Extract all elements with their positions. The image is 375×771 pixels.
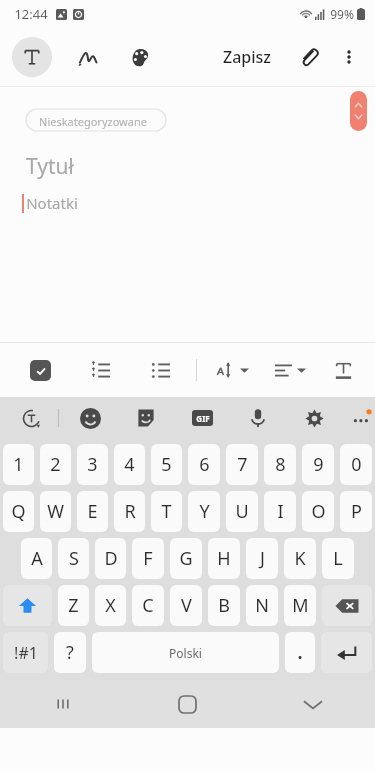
staticText: .: [297, 640, 303, 665]
staticText: 8: [275, 452, 286, 477]
button[interactable]: S: [58, 538, 89, 579]
button[interactable]: Checklist: [22, 352, 58, 388]
button[interactable]: 9: [302, 444, 334, 485]
button[interactable]: .: [285, 632, 315, 673]
button[interactable]: Font size: [213, 353, 253, 387]
button[interactable]: G: [170, 538, 202, 579]
button[interactable]: Stickers: [131, 403, 161, 433]
button[interactable]: 8: [264, 444, 296, 485]
button[interactable]: Alignment: [271, 354, 310, 387]
staticText: 9: [313, 452, 324, 477]
staticText: L: [333, 546, 343, 571]
button[interactable]: J: [246, 538, 278, 579]
staticText: T: [161, 499, 172, 524]
button[interactable]: Text recognition: [16, 403, 46, 433]
staticText: E: [87, 499, 98, 524]
button[interactable]: P: [340, 491, 372, 532]
staticText: A: [31, 546, 43, 571]
button[interactable]: Text style: [325, 352, 361, 388]
button[interactable]: Nieskategoryzowane: [26, 109, 160, 134]
button[interactable]: Draw: [68, 37, 108, 77]
button[interactable]: R: [114, 491, 145, 532]
staticText: I: [277, 499, 284, 524]
button[interactable]: W: [40, 491, 71, 532]
button[interactable]: F: [132, 538, 164, 579]
button[interactable]: Y: [188, 491, 220, 532]
staticText: 1: [13, 452, 24, 477]
button[interactable]: 7: [226, 444, 258, 485]
button[interactable]: D: [95, 538, 126, 579]
button[interactable]: More: [349, 403, 375, 433]
staticText: R: [124, 499, 136, 524]
staticText: 5: [161, 452, 172, 477]
staticText: 0: [351, 452, 362, 477]
button[interactable]: 2: [40, 444, 71, 485]
button[interactable]: Backspace: [322, 585, 372, 626]
button[interactable]: 6: [188, 444, 220, 485]
staticText: Notatki: [26, 193, 78, 213]
button[interactable]: Recent apps: [0, 680, 125, 728]
button[interactable]: Home: [125, 680, 250, 728]
staticText: F: [143, 546, 153, 571]
button[interactable]: C: [132, 585, 164, 626]
button[interactable]: T: [151, 491, 182, 532]
staticText: B: [218, 593, 230, 618]
button[interactable]: 5: [151, 444, 182, 485]
staticText: G: [179, 546, 193, 571]
button[interactable]: Numbered list: [82, 352, 118, 388]
button[interactable]: !#1: [3, 632, 48, 673]
button[interactable]: X: [95, 585, 126, 626]
button[interactable]: 3: [77, 444, 108, 485]
staticText: P: [351, 499, 362, 524]
staticText: Z: [68, 593, 79, 618]
button[interactable]: U: [226, 491, 258, 532]
staticText: V: [181, 593, 192, 618]
button[interactable]: ?: [54, 632, 86, 673]
staticText: M: [292, 593, 309, 618]
button[interactable]: L: [322, 538, 354, 579]
button[interactable]: V: [170, 585, 202, 626]
button[interactable]: O: [302, 491, 334, 532]
button[interactable]: Voice input: [243, 403, 273, 433]
button[interactable]: Palette: [120, 37, 160, 77]
staticText: 6: [199, 452, 210, 477]
button[interactable]: M: [284, 585, 316, 626]
button[interactable]: Text mode: [12, 37, 52, 77]
button[interactable]: Attach: [289, 37, 329, 77]
button[interactable]: Enter: [321, 632, 372, 673]
staticText: Tytuł: [26, 152, 74, 181]
button[interactable]: N: [246, 585, 278, 626]
staticText: U: [235, 499, 249, 524]
staticText: Q: [11, 499, 26, 524]
button[interactable]: Keyboard settings: [299, 403, 329, 433]
button[interactable]: A: [21, 538, 52, 579]
button[interactable]: Polski: [92, 632, 279, 673]
staticText: C: [142, 593, 154, 618]
button[interactable]: More options: [329, 37, 369, 77]
button[interactable]: Zapisz: [215, 40, 279, 74]
button[interactable]: I: [264, 491, 296, 532]
staticText: K: [294, 546, 306, 571]
button[interactable]: Shift: [3, 585, 52, 626]
staticText: X: [105, 593, 116, 618]
button[interactable]: Hide keyboard: [250, 680, 375, 728]
button[interactable]: Q: [3, 491, 34, 532]
staticText: 2: [50, 452, 61, 477]
button[interactable]: Scroll: [350, 91, 367, 131]
staticText: 3: [87, 452, 98, 477]
button[interactable]: Z: [58, 585, 89, 626]
button[interactable]: 4: [114, 444, 145, 485]
staticText: 12:44: [14, 5, 48, 23]
button[interactable]: H: [208, 538, 240, 579]
button[interactable]: B: [208, 585, 240, 626]
staticText: J: [260, 546, 265, 571]
button[interactable]: 0: [340, 444, 372, 485]
button[interactable]: E: [77, 491, 108, 532]
button[interactable]: GIF: [187, 403, 217, 433]
button[interactable]: 1: [3, 444, 34, 485]
button[interactable]: Emoji: [75, 403, 105, 433]
staticText: 4: [124, 452, 135, 477]
button[interactable]: Bulleted list: [142, 352, 178, 388]
staticText: ?: [66, 640, 74, 665]
button[interactable]: K: [284, 538, 316, 579]
